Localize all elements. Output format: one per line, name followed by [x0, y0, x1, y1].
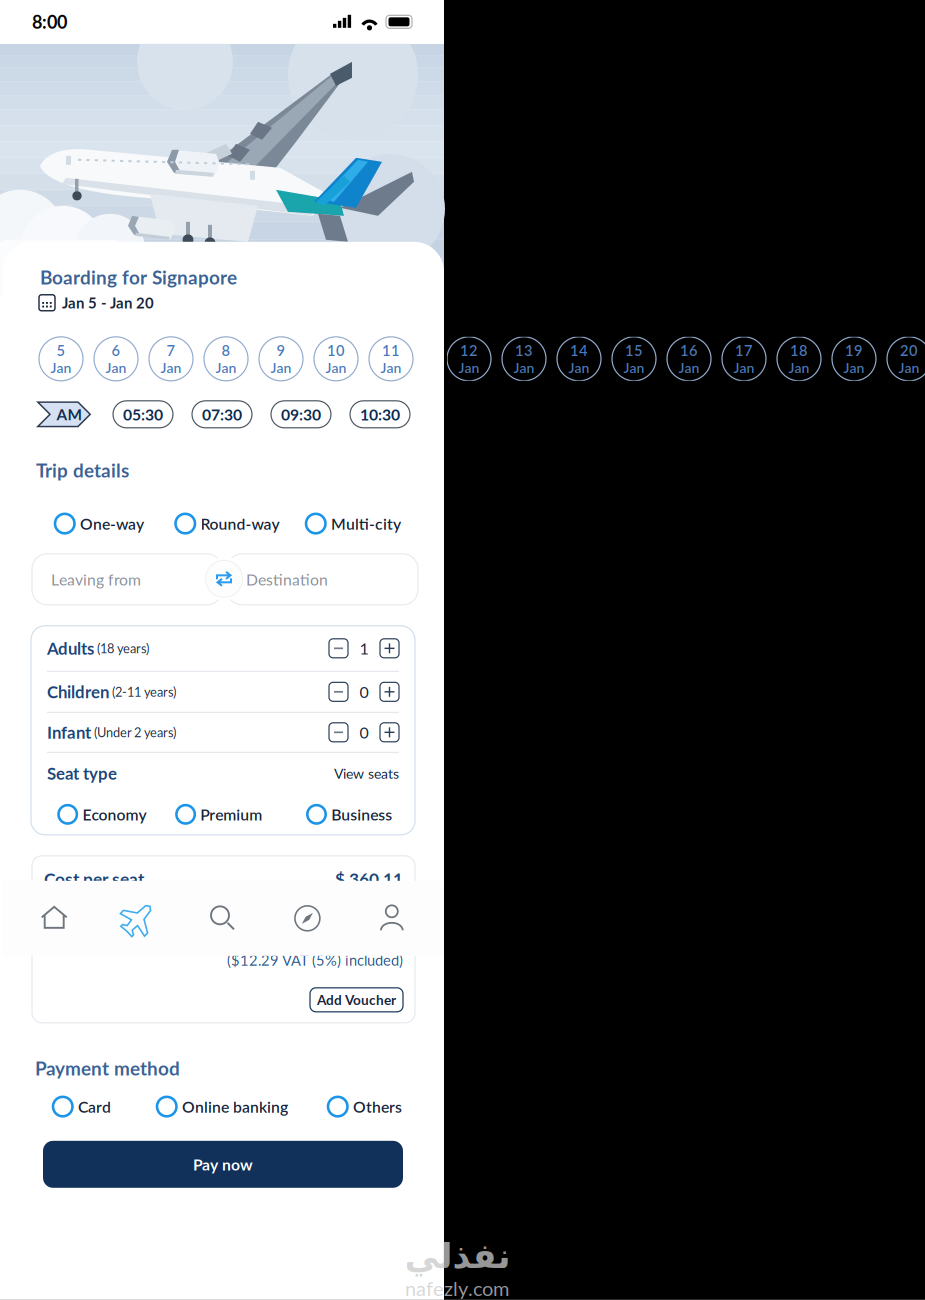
button[interactable]: Round-way	[175, 514, 279, 533]
staticText: (2-11 years)	[109, 684, 176, 699]
button[interactable]: Business	[307, 805, 392, 824]
button[interactable]: 07:30	[192, 401, 252, 428]
button[interactable]: 17	[722, 337, 766, 381]
button[interactable]: Leaving from	[32, 554, 222, 605]
button[interactable]: Profile	[350, 905, 434, 931]
staticText: Leaving from	[51, 570, 141, 589]
staticText: 13	[515, 342, 533, 359]
staticText: Premium	[200, 805, 262, 824]
button[interactable]: 11	[369, 337, 413, 381]
staticText: Jan	[270, 359, 291, 376]
staticText: 8:00	[32, 11, 67, 33]
staticText: 09:30	[281, 405, 321, 424]
button[interactable]: Increase	[380, 682, 399, 701]
staticText: Infant	[47, 722, 91, 742]
staticText: Jan	[380, 359, 401, 376]
staticText: Round-way	[200, 514, 279, 533]
staticText: 17	[735, 342, 753, 359]
button[interactable]: Swap origin and destination	[205, 560, 242, 597]
staticText: (18 years)	[94, 641, 149, 656]
staticText: Destination	[246, 570, 328, 589]
staticText: Payment method	[35, 1057, 180, 1079]
staticText: 05:30	[123, 405, 163, 424]
button[interactable]: 8	[204, 337, 248, 381]
staticText: Jan	[898, 359, 919, 376]
staticText: 0	[359, 723, 368, 742]
staticText: 15	[625, 342, 643, 359]
staticText: 18	[790, 342, 808, 359]
staticText: Jan	[105, 359, 126, 376]
staticText: 12	[460, 342, 478, 359]
staticText: 9	[276, 342, 285, 359]
button[interactable]: 10	[314, 337, 358, 381]
button[interactable]: Pay now	[43, 1141, 403, 1188]
button[interactable]: 09:30	[271, 401, 331, 428]
button[interactable]: Increase	[380, 723, 399, 742]
staticText: 19	[845, 342, 863, 359]
button[interactable]: Others	[328, 1097, 402, 1116]
button[interactable]: Premium	[176, 805, 262, 824]
button[interactable]: Economy	[58, 805, 146, 824]
button[interactable]: 15	[612, 337, 656, 381]
staticText: Jan	[568, 359, 589, 376]
staticText: 10:30	[360, 405, 400, 424]
button[interactable]: Destination	[227, 554, 418, 605]
button[interactable]: 19	[832, 337, 876, 381]
button[interactable]: 5	[39, 337, 83, 381]
button[interactable]: 20	[887, 337, 925, 381]
staticText: Jan	[160, 359, 181, 376]
button[interactable]: 14	[557, 337, 601, 381]
staticText: ($12.29 VAT (5%) included)	[227, 951, 403, 969]
button[interactable]: View seats	[334, 765, 399, 782]
button[interactable]: 6	[94, 337, 138, 381]
button[interactable]: Add Voucher	[310, 988, 403, 1012]
staticText: Economy	[82, 805, 146, 824]
staticText: (Under 2 years)	[91, 725, 176, 740]
button[interactable]: 10:30	[350, 401, 410, 428]
button[interactable]: 18	[777, 337, 821, 381]
button[interactable]: Explore	[265, 905, 350, 931]
button[interactable]: Decrease	[329, 682, 348, 701]
staticText: Jan	[623, 359, 644, 376]
staticText: Adults	[47, 638, 94, 658]
staticText: 6	[111, 342, 120, 359]
button[interactable]: Online banking	[157, 1097, 288, 1116]
staticText: Jan	[788, 359, 809, 376]
staticText: Children	[47, 682, 109, 702]
staticText: Card	[78, 1097, 111, 1116]
staticText: Jan	[513, 359, 534, 376]
button[interactable]: 9	[259, 337, 303, 381]
staticText: Jan	[215, 359, 236, 376]
button[interactable]: AM	[37, 401, 91, 427]
button[interactable]: 05:30	[113, 401, 173, 428]
button[interactable]: Flights	[96, 898, 181, 938]
staticText: 8	[221, 342, 230, 359]
button[interactable]: Home	[12, 905, 96, 931]
button[interactable]: One-way	[55, 514, 144, 533]
staticText: 07:30	[202, 405, 242, 424]
staticText: 20	[900, 342, 918, 359]
staticText: $ 360.11	[335, 868, 403, 889]
staticText: Cost per seat	[44, 868, 144, 889]
staticText: 0	[359, 682, 368, 701]
staticText: nafezly.com	[405, 1276, 509, 1300]
button[interactable]: Search	[181, 905, 265, 931]
staticText: 7	[166, 342, 175, 359]
staticText: 14	[570, 342, 588, 359]
button[interactable]: Decrease	[329, 639, 348, 658]
button[interactable]: 16	[667, 337, 711, 381]
button[interactable]: 7	[149, 337, 193, 381]
button[interactable]: 13	[502, 337, 546, 381]
staticText: Add Voucher	[317, 992, 396, 1008]
button[interactable]: Increase	[380, 639, 399, 658]
button[interactable]: Card	[53, 1097, 111, 1116]
staticText: Jan	[733, 359, 754, 376]
button[interactable]: 12	[447, 337, 491, 381]
button[interactable]: Multi-city	[306, 514, 401, 533]
staticText: Seat type	[47, 763, 117, 783]
staticText: 16	[680, 342, 698, 359]
staticText: 5	[56, 342, 65, 359]
button[interactable]: Decrease	[329, 723, 348, 742]
staticText: Others	[353, 1097, 402, 1116]
staticText: نفذلي	[404, 1236, 510, 1276]
